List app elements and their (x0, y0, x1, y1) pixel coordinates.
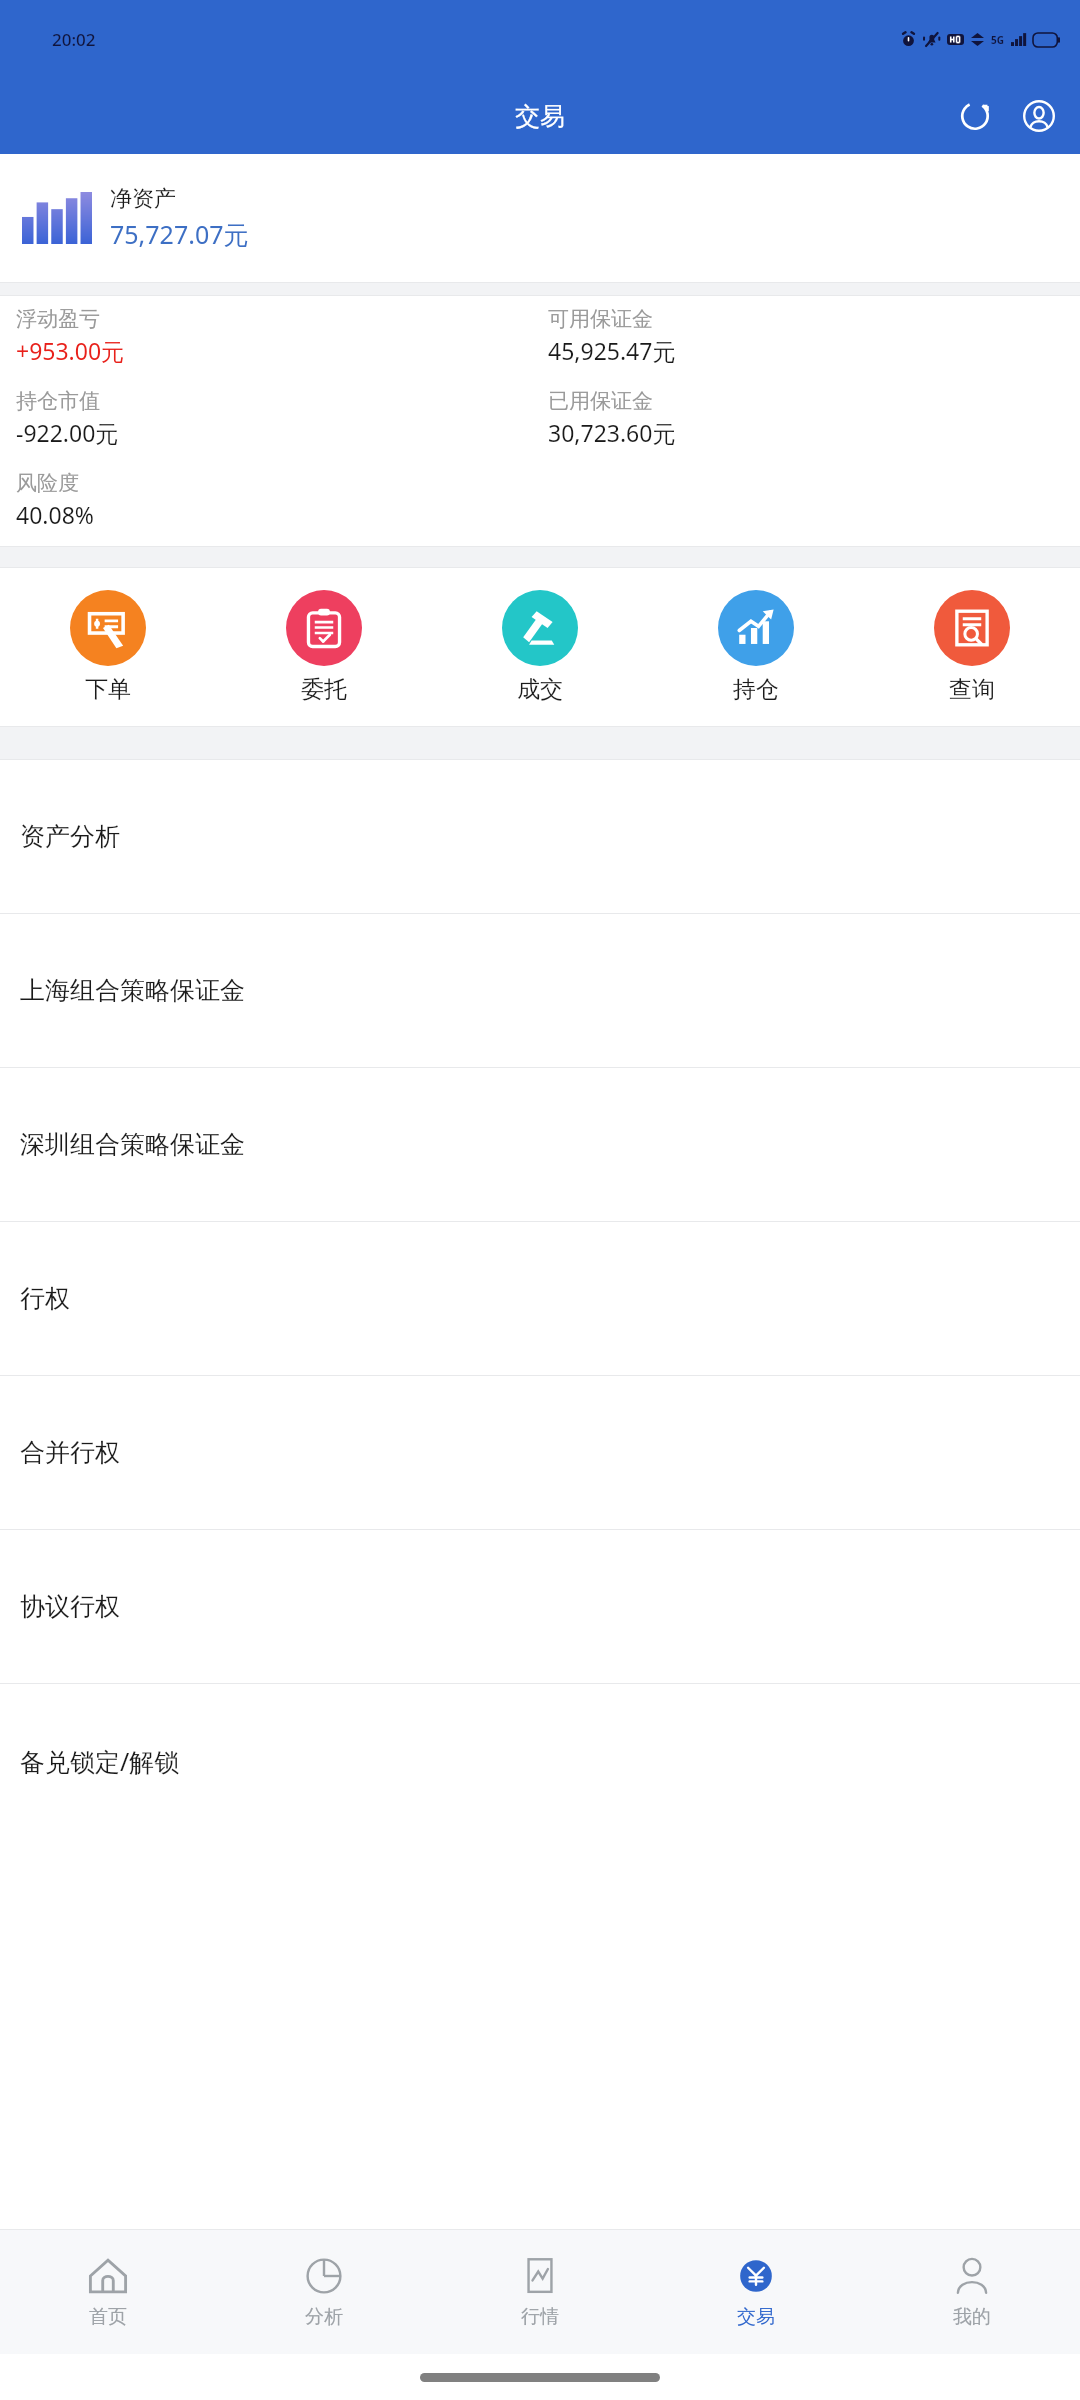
button[interactable]: 净资产 (0, 154, 1080, 282)
staticText: 5G (991, 33, 1004, 47)
button[interactable]: 上海组合策略保证金 (0, 914, 1080, 1067)
staticText: 40.08% (16, 499, 94, 530)
button[interactable]: 资产分析 (0, 760, 1080, 913)
button[interactable]: 我的 (864, 2229, 1080, 2354)
staticText: 净资产 (110, 185, 176, 213)
button[interactable]: 委托 (216, 584, 432, 710)
staticText: 浮动盈亏 (16, 306, 100, 332)
staticText: 已用保证金 (548, 388, 653, 414)
staticText: 行权 (20, 1283, 70, 1314)
staticText: 备兑锁定/解锁 (20, 1744, 180, 1778)
button[interactable]: 下单 (0, 584, 216, 710)
staticText: 成交 (517, 675, 563, 704)
staticText: 交易 (737, 2305, 775, 2329)
button[interactable]: 首页 (0, 2229, 216, 2354)
staticText: 查询 (949, 675, 995, 704)
staticText: 20:02 (52, 28, 96, 51)
button[interactable]: 行情 (432, 2229, 648, 2354)
button[interactable]: 合并行权 (0, 1376, 1080, 1529)
staticText: 上海组合策略保证金 (20, 975, 245, 1006)
button[interactable]: 备兑锁定/解锁 (0, 1684, 1080, 1837)
staticText: -922.00元 (16, 417, 119, 448)
staticText: 30,723.60元 (548, 417, 676, 448)
staticText: 45,925.47元 (548, 335, 676, 366)
staticText: 首页 (89, 2305, 127, 2329)
button[interactable]: 行权 (0, 1222, 1080, 1375)
button[interactable]: 分析 (216, 2229, 432, 2354)
staticText: 委托 (301, 675, 347, 704)
button[interactable]: 持仓 (648, 584, 864, 710)
button[interactable]: 成交 (432, 584, 648, 710)
button[interactable]: 查询 (864, 584, 1080, 710)
button[interactable]: Profile (1016, 93, 1062, 139)
staticText: 深圳组合策略保证金 (20, 1129, 245, 1160)
staticText: 风险度 (16, 470, 79, 496)
button[interactable]: 交易 (648, 2229, 864, 2354)
staticText: 协议行权 (20, 1591, 120, 1622)
button[interactable]: 深圳组合策略保证金 (0, 1068, 1080, 1221)
staticText: 合并行权 (20, 1437, 120, 1468)
staticText: 可用保证金 (548, 306, 653, 332)
button[interactable]: Refresh (952, 93, 998, 139)
staticText: 持仓 (733, 675, 779, 704)
staticText: +953.00元 (16, 335, 125, 366)
staticText: 75,727.07元 (110, 217, 249, 251)
staticText: 资产分析 (20, 821, 120, 852)
button[interactable]: 协议行权 (0, 1530, 1080, 1683)
staticText: 交易 (515, 101, 565, 132)
staticText: 持仓市值 (16, 388, 100, 414)
staticText: 分析 (305, 2305, 343, 2329)
staticText: 我的 (953, 2305, 991, 2329)
staticText: 行情 (521, 2305, 559, 2329)
staticText: 下单 (85, 675, 131, 704)
